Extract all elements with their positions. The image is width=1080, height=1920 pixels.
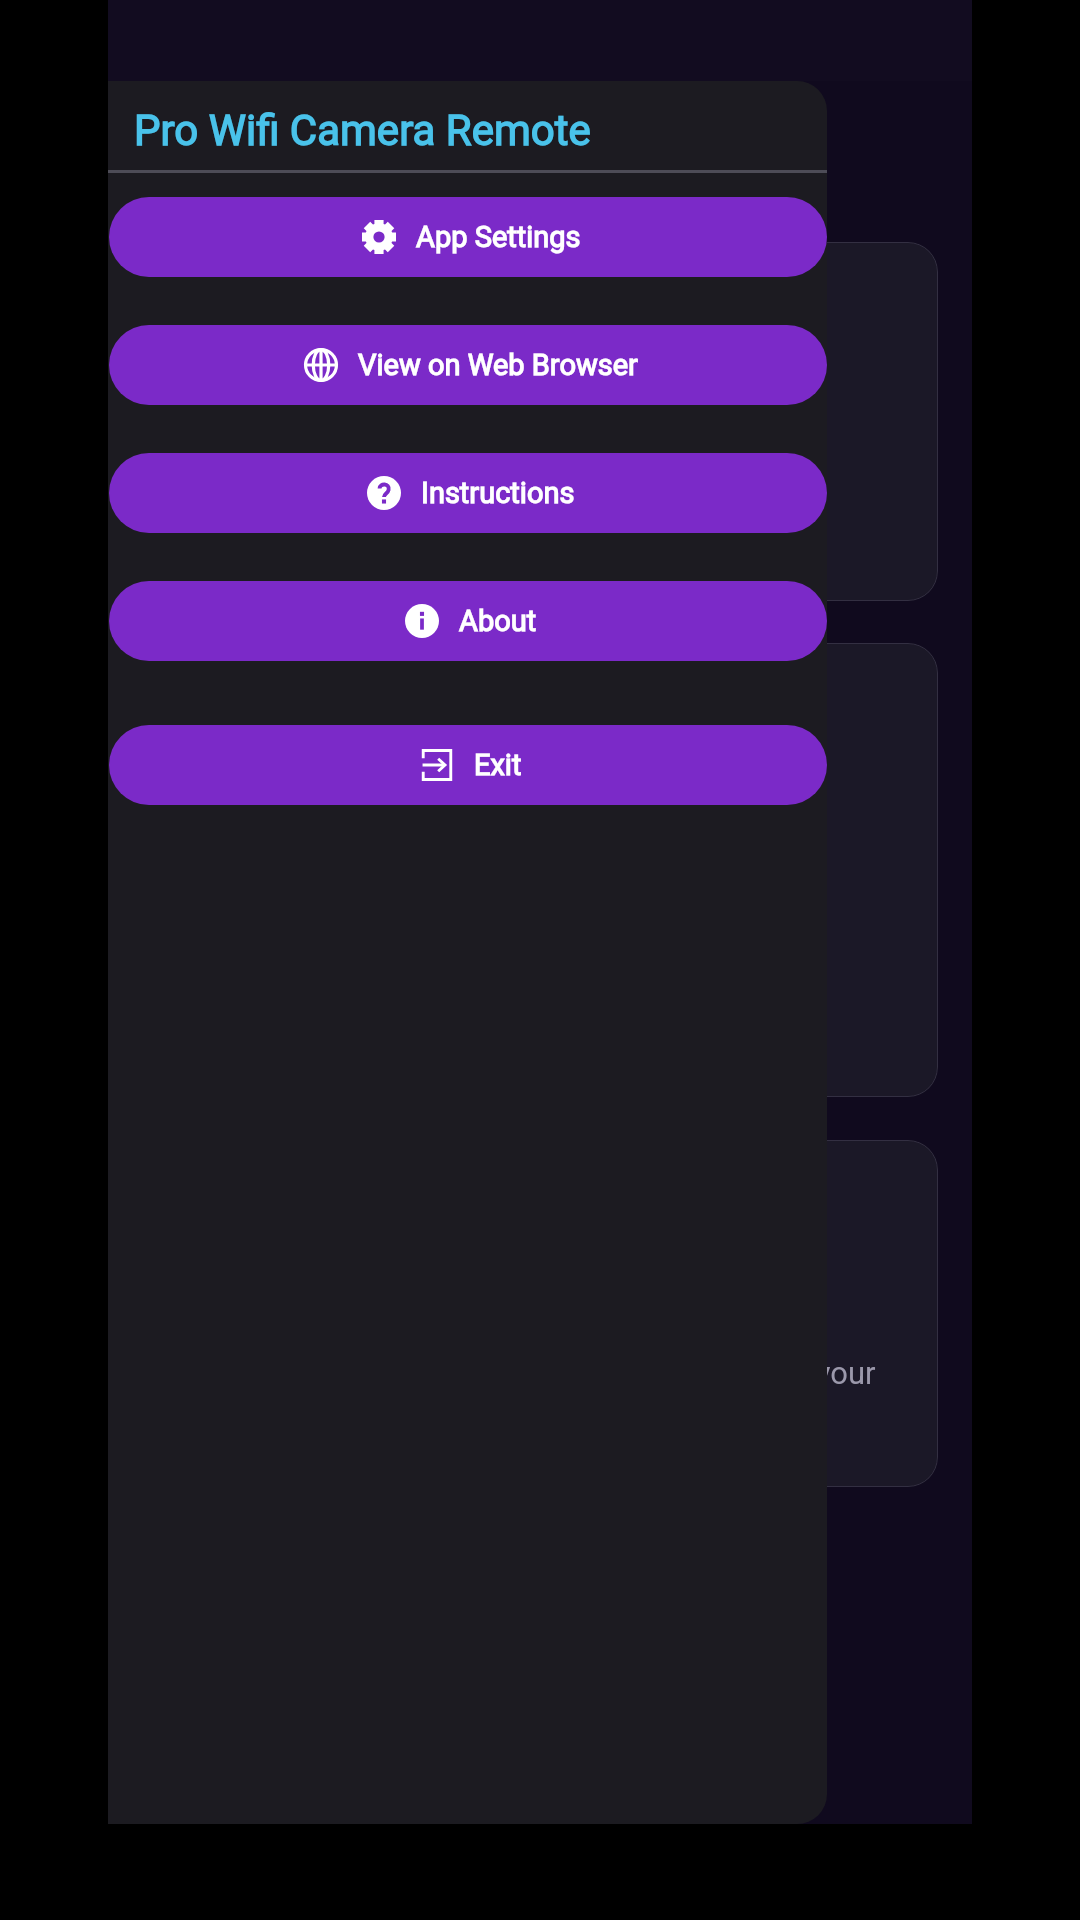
button[interactable]: Instructions [109, 453, 827, 533]
button[interactable]: View on Web Browser [109, 325, 827, 405]
staticText: Instructions [421, 476, 575, 510]
staticText: Exit [474, 748, 522, 782]
button[interactable]: About [109, 581, 827, 661]
staticText: About [459, 604, 537, 638]
staticText: Pro Wifi Camera Remote [134, 106, 591, 155]
button[interactable]: App Settings [109, 197, 827, 277]
staticText: App Settings [416, 220, 581, 254]
staticText: View on Web Browser [358, 348, 638, 382]
staticText: Tap below to connect to your [478, 1355, 876, 1391]
button[interactable]: Exit [109, 725, 827, 805]
